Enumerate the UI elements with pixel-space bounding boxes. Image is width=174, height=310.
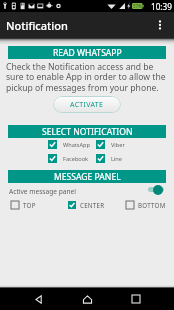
button[interactable]: Facebook	[48, 154, 89, 163]
staticText: ACTIVATE	[70, 100, 104, 110]
button[interactable]: Recent apps	[125, 288, 147, 310]
staticText: 10:39	[151, 1, 172, 12]
button[interactable]: Active message panel	[144, 183, 168, 197]
button[interactable]: More options	[149, 14, 171, 36]
staticText: READ WHATSAPP	[53, 47, 122, 59]
button[interactable]: WhatsApp	[48, 140, 90, 149]
staticText: Viber	[111, 141, 125, 149]
staticText: Facebook	[63, 155, 89, 163]
button[interactable]: ACTIVATE	[53, 96, 121, 113]
button[interactable]: BOTTOM	[126, 201, 166, 209]
staticText: MESSAGE PANEL	[54, 171, 121, 183]
button[interactable]: CENTER	[68, 201, 105, 209]
button[interactable]: Home	[76, 288, 98, 310]
button[interactable]: Line	[96, 154, 122, 163]
staticText: BOTTOM	[138, 201, 166, 209]
staticText: Notification	[6, 18, 68, 33]
staticText: TOP	[23, 201, 36, 209]
button[interactable]: TOP	[11, 201, 36, 209]
staticText: WhatsApp	[63, 141, 90, 149]
staticText: Active message panel	[9, 187, 76, 196]
staticText: SELECT NOTIFICATION	[42, 126, 133, 138]
staticText: Line	[111, 155, 122, 163]
staticText: CENTER	[80, 201, 105, 209]
button[interactable]: Back	[27, 288, 49, 310]
staticText: Check the Notification access and be sur…	[6, 61, 172, 94]
staticText: 57%	[133, 3, 142, 9]
button[interactable]: Viber	[96, 140, 125, 149]
